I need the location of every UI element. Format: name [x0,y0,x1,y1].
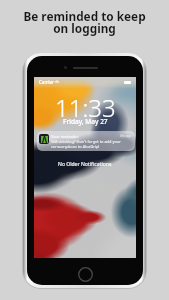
staticText: No Older Notifications [58,161,112,168]
staticText: Your reminder [51,134,79,139]
button[interactable]: Your reminder [37,131,135,151]
staticText: Carrier [39,79,54,85]
button[interactable]: Home [78,267,93,282]
staticText: 11:33 [55,91,116,124]
staticText: Friday, May 27 [63,117,108,126]
staticText: Be reminded to keep on logging [23,8,146,37]
staticText: Still drinking? Don't forget to add your [51,139,121,144]
staticText: consumptions to AlcoGrip! [51,144,100,149]
staticText: 3m ago [120,134,132,138]
